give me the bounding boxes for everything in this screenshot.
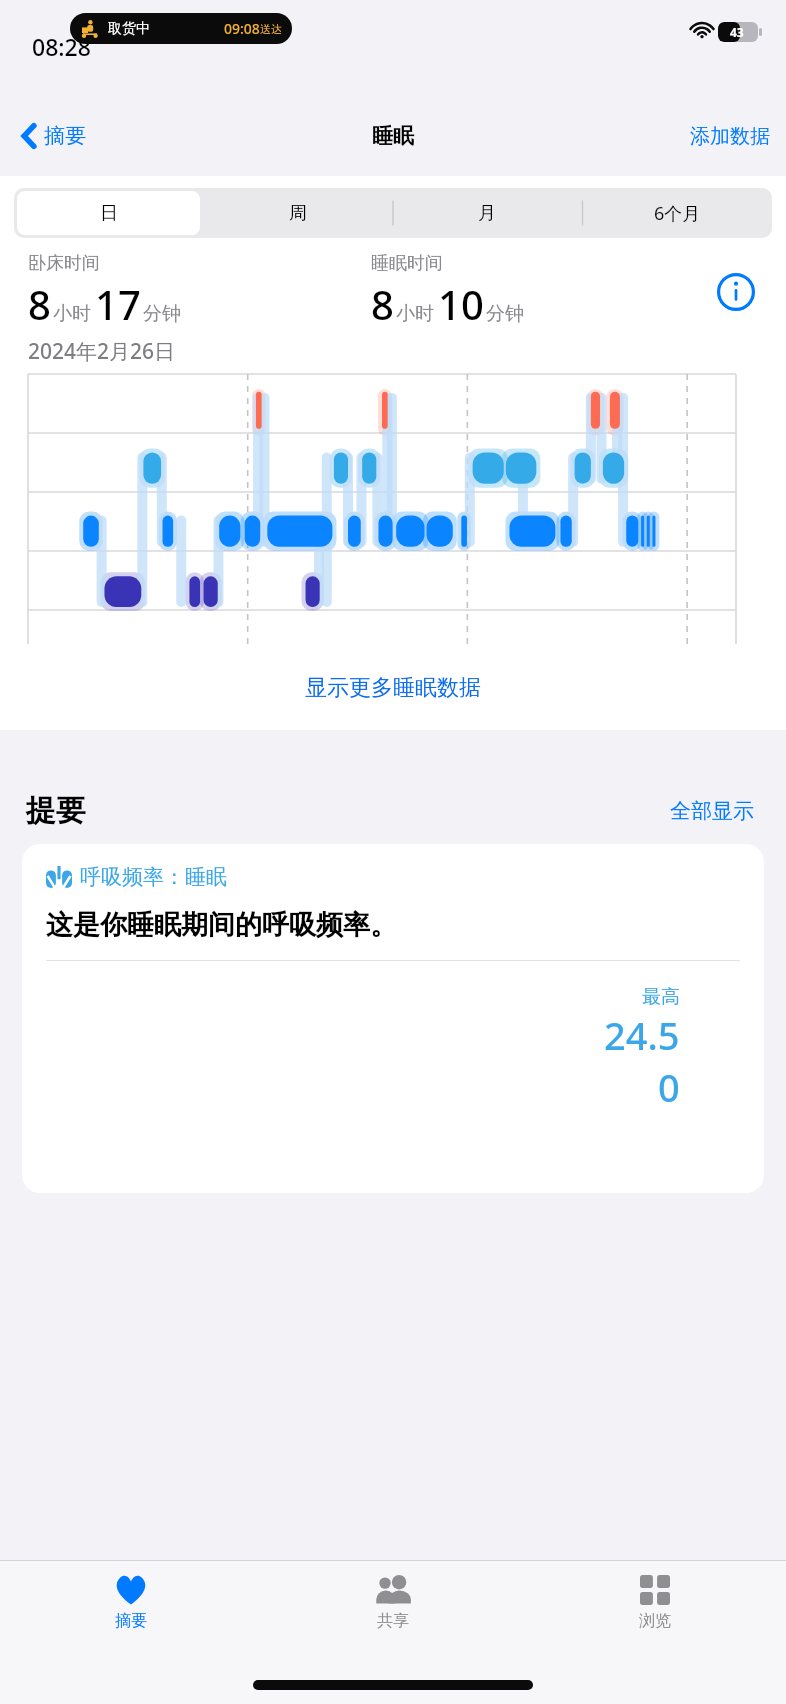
button[interactable]: 周 <box>206 191 389 235</box>
button[interactable]: 显示更多睡眠数据 <box>291 668 495 708</box>
button[interactable]: 日 <box>17 191 200 235</box>
staticText: 浏览 <box>639 1611 671 1631</box>
button[interactable]: 6个月 <box>585 191 769 235</box>
staticText: 送达 <box>260 22 282 36</box>
staticText: 摘要 <box>115 1611 147 1631</box>
staticText: 8 <box>371 277 394 331</box>
staticText: 共享 <box>377 1611 409 1631</box>
staticText: 睡眠时间 <box>371 252 443 275</box>
staticText: 最高 <box>642 985 680 1009</box>
staticText: 这是你睡眠期间的呼吸频率。 <box>46 908 397 942</box>
staticText: 6个月 <box>654 201 701 226</box>
staticText: 小时 <box>53 302 91 326</box>
button[interactable]: 呼吸频率：睡眠 <box>22 844 764 1193</box>
staticText: 08:28 <box>32 31 91 62</box>
staticText: 0 <box>658 1061 680 1113</box>
staticText: 摘要 <box>44 123 86 149</box>
staticText: 呼吸频率：睡眠 <box>80 864 227 890</box>
staticText: 分钟 <box>143 302 181 326</box>
staticText: 17 <box>95 277 141 331</box>
button[interactable]: 共享 <box>262 1561 524 1666</box>
button[interactable]: 月 <box>395 191 579 235</box>
button[interactable]: 浏览 <box>524 1561 786 1666</box>
staticText: 分钟 <box>486 302 524 326</box>
staticText: 10 <box>438 277 484 331</box>
staticText: 日 <box>100 202 118 225</box>
button[interactable]: 全部显示 <box>664 794 760 828</box>
staticText: 小时 <box>396 302 434 326</box>
button[interactable]: 关于睡眠数据 <box>714 270 758 314</box>
staticText: 2024年2月26日 <box>28 337 176 366</box>
button[interactable]: 添加数据 <box>674 116 786 157</box>
staticText: 8 <box>28 277 51 331</box>
staticText: 月 <box>478 202 496 225</box>
staticText: 睡眠 <box>372 123 414 149</box>
button[interactable]: 摘要 <box>14 117 94 155</box>
staticText: 周 <box>289 202 307 225</box>
staticText: 09:08 <box>224 19 260 38</box>
staticText: 24.5 <box>604 1009 680 1061</box>
staticText: 提要 <box>26 792 86 830</box>
staticText: 43 <box>730 24 744 40</box>
button[interactable]: Live Activity 取货中 <box>70 13 292 44</box>
staticText: 卧床时间 <box>28 252 100 275</box>
staticText: 取货中 <box>108 20 150 38</box>
button[interactable]: 摘要 <box>0 1561 262 1666</box>
